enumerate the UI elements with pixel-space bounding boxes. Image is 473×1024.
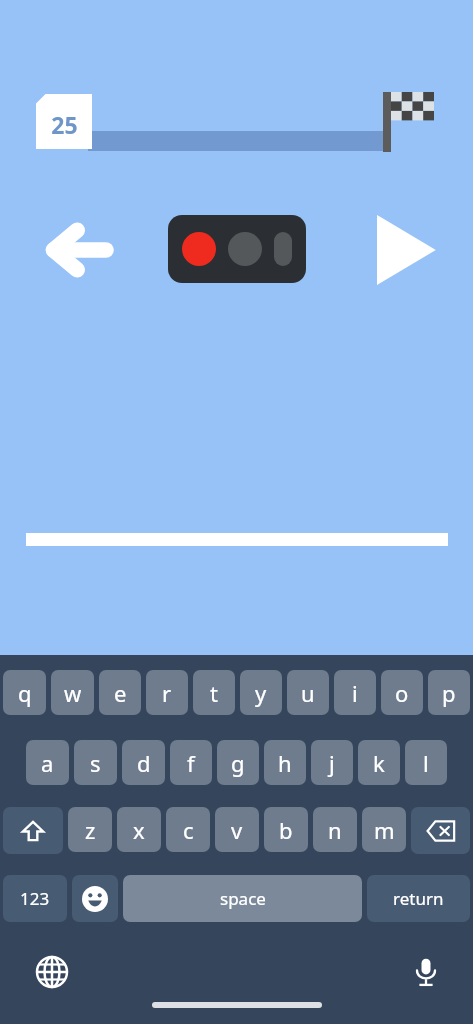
button[interactable]: 123 (3, 875, 67, 922)
staticText: j (329, 748, 335, 778)
button[interactable]: t (193, 670, 235, 715)
staticText: c (183, 815, 194, 845)
staticText: space (220, 887, 266, 910)
button[interactable]: k (358, 740, 400, 785)
button[interactable]: Emoji (72, 875, 118, 922)
button[interactable]: s (74, 740, 117, 785)
button[interactable]: v (215, 807, 259, 852)
staticText: s (90, 748, 101, 778)
staticText: w (64, 678, 82, 708)
button[interactable]: g (217, 740, 259, 785)
button[interactable]: Traffic light (168, 215, 306, 283)
staticText: u (301, 678, 315, 708)
staticText: k (373, 748, 385, 778)
staticText: 123 (20, 887, 50, 910)
button[interactable]: n (313, 807, 357, 852)
button[interactable]: x (117, 807, 161, 852)
staticText: q (18, 678, 32, 708)
staticText: v (231, 815, 243, 845)
button[interactable]: d (122, 740, 165, 785)
staticText: e (114, 678, 127, 708)
staticText: i (352, 678, 358, 708)
button[interactable]: j (311, 740, 353, 785)
staticText: x (133, 815, 145, 845)
button[interactable]: u (287, 670, 329, 715)
button[interactable]: m (362, 807, 406, 852)
button[interactable]: b (264, 807, 308, 852)
button[interactable]: h (264, 740, 306, 785)
button[interactable]: r (146, 670, 188, 715)
staticText: return (393, 887, 444, 910)
staticText: a (41, 748, 54, 778)
button[interactable]: f (170, 740, 212, 785)
staticText: y (255, 678, 267, 708)
button[interactable]: o (381, 670, 423, 715)
staticText: t (210, 678, 218, 708)
button[interactable]: p (428, 670, 470, 715)
staticText: f (187, 748, 195, 778)
button[interactable]: i (334, 670, 376, 715)
button[interactable]: w (51, 670, 94, 715)
button[interactable]: a (26, 740, 69, 785)
staticText: g (231, 748, 245, 778)
button[interactable]: Shift (3, 807, 63, 854)
button[interactable]: Play (378, 222, 428, 278)
button[interactable]: z (68, 807, 112, 852)
staticText: b (279, 815, 293, 845)
button[interactable]: Voice input (411, 957, 441, 987)
staticText: 25 (51, 109, 78, 140)
staticText: p (442, 678, 456, 708)
staticText: h (278, 748, 292, 778)
button[interactable]: c (166, 807, 210, 852)
staticText: z (85, 815, 96, 845)
button[interactable]: e (99, 670, 141, 715)
button[interactable]: Backspace (411, 807, 470, 854)
button[interactable]: return (367, 875, 470, 922)
staticText: n (328, 815, 342, 845)
button[interactable]: Change language (36, 956, 68, 988)
staticText: o (395, 678, 409, 708)
button[interactable]: l (405, 740, 447, 785)
staticText: r (162, 678, 172, 708)
staticText: d (137, 748, 151, 778)
staticText: l (423, 748, 429, 778)
button[interactable]: Previous (42, 220, 106, 280)
other: Finish flag (381, 90, 437, 152)
button[interactable]: y (240, 670, 282, 715)
button[interactable]: space (123, 875, 362, 922)
staticText: m (374, 815, 395, 845)
button[interactable]: q (3, 670, 46, 715)
